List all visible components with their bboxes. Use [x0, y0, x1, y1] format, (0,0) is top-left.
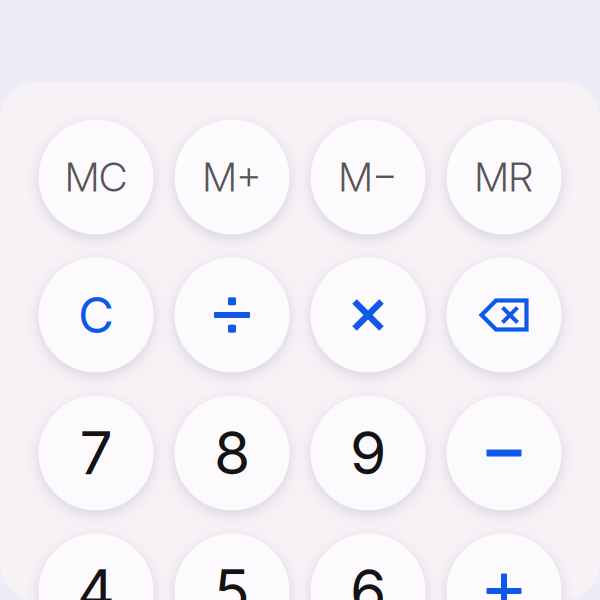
- button[interactable]: 7: [28, 384, 164, 522]
- staticText: 5: [214, 555, 250, 600]
- button[interactable]: 4: [28, 522, 164, 600]
- button[interactable]: 9: [300, 384, 436, 522]
- button[interactable]: 8: [164, 384, 300, 522]
- button[interactable]: Multiply: [300, 246, 436, 384]
- button[interactable]: Divide: [164, 246, 300, 384]
- button[interactable]: Clear: [28, 246, 164, 384]
- staticText: MC: [65, 153, 127, 201]
- button[interactable]: 6: [300, 522, 436, 600]
- button[interactable]: Memory clear: [28, 108, 164, 246]
- button[interactable]: Memory subtract: [300, 108, 436, 246]
- button[interactable]: Plus: [436, 522, 572, 600]
- staticText: M+: [202, 153, 261, 201]
- staticText: 6: [350, 555, 386, 600]
- button[interactable]: Backspace: [436, 246, 572, 384]
- button[interactable]: Memory recall: [436, 108, 572, 246]
- button[interactable]: 5: [164, 522, 300, 600]
- button[interactable]: Memory add: [164, 108, 300, 246]
- staticText: 7: [79, 417, 112, 488]
- staticText: 4: [77, 555, 115, 600]
- staticText: M−: [338, 153, 397, 201]
- staticText: MR: [474, 153, 533, 201]
- staticText: 9: [350, 417, 386, 488]
- staticText: 8: [214, 417, 250, 488]
- staticText: C: [78, 285, 114, 345]
- button[interactable]: Minus: [436, 384, 572, 522]
